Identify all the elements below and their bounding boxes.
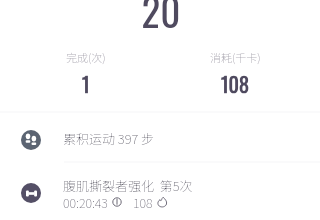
- staticText: 完成(次): [66, 49, 106, 65]
- button[interactable]: 累积运动 397 步: [0, 114, 320, 161]
- staticText: 108: [133, 193, 153, 211]
- staticText: 00:20:43: [63, 193, 108, 211]
- staticText: 消耗(千卡): [210, 49, 261, 65]
- staticText: 1: [82, 69, 90, 99]
- staticText: 腹肌撕裂者强化 第5次: [63, 176, 193, 195]
- staticText: 累积运动 397 步: [63, 129, 155, 148]
- button[interactable]: 腹肌撕裂者强化 第5次: [0, 162, 320, 220]
- staticText: 108: [221, 69, 249, 99]
- staticText: 20: [121, 0, 201, 39]
